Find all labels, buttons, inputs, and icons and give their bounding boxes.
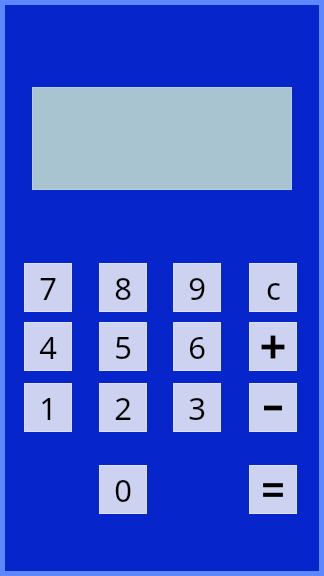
staticText: 7 [39, 267, 57, 309]
staticText: 0 [114, 469, 132, 511]
button[interactable]: 3 [174, 384, 220, 431]
staticText: 6 [188, 326, 206, 368]
staticText: 3 [188, 387, 206, 429]
button[interactable]: c [250, 264, 296, 311]
staticText: c [266, 267, 281, 309]
button[interactable]: 6 [174, 323, 220, 370]
button[interactable] [250, 466, 296, 513]
button[interactable]: 8 [100, 264, 146, 311]
button[interactable] [250, 323, 296, 370]
staticText: 5 [114, 326, 132, 368]
staticText: 2 [114, 387, 132, 429]
button[interactable]: 5 [100, 323, 146, 370]
staticText: 4 [39, 326, 57, 368]
button[interactable]: 1 [25, 384, 71, 431]
button[interactable]: 0 [100, 466, 146, 513]
staticText: 1 [39, 387, 57, 429]
staticText: 8 [114, 267, 132, 309]
button[interactable]: 2 [100, 384, 146, 431]
button[interactable]: 9 [174, 264, 220, 311]
button[interactable]: 7 [25, 264, 71, 311]
button[interactable] [250, 384, 296, 431]
button[interactable]: 4 [25, 323, 71, 370]
staticText: 9 [188, 267, 206, 309]
